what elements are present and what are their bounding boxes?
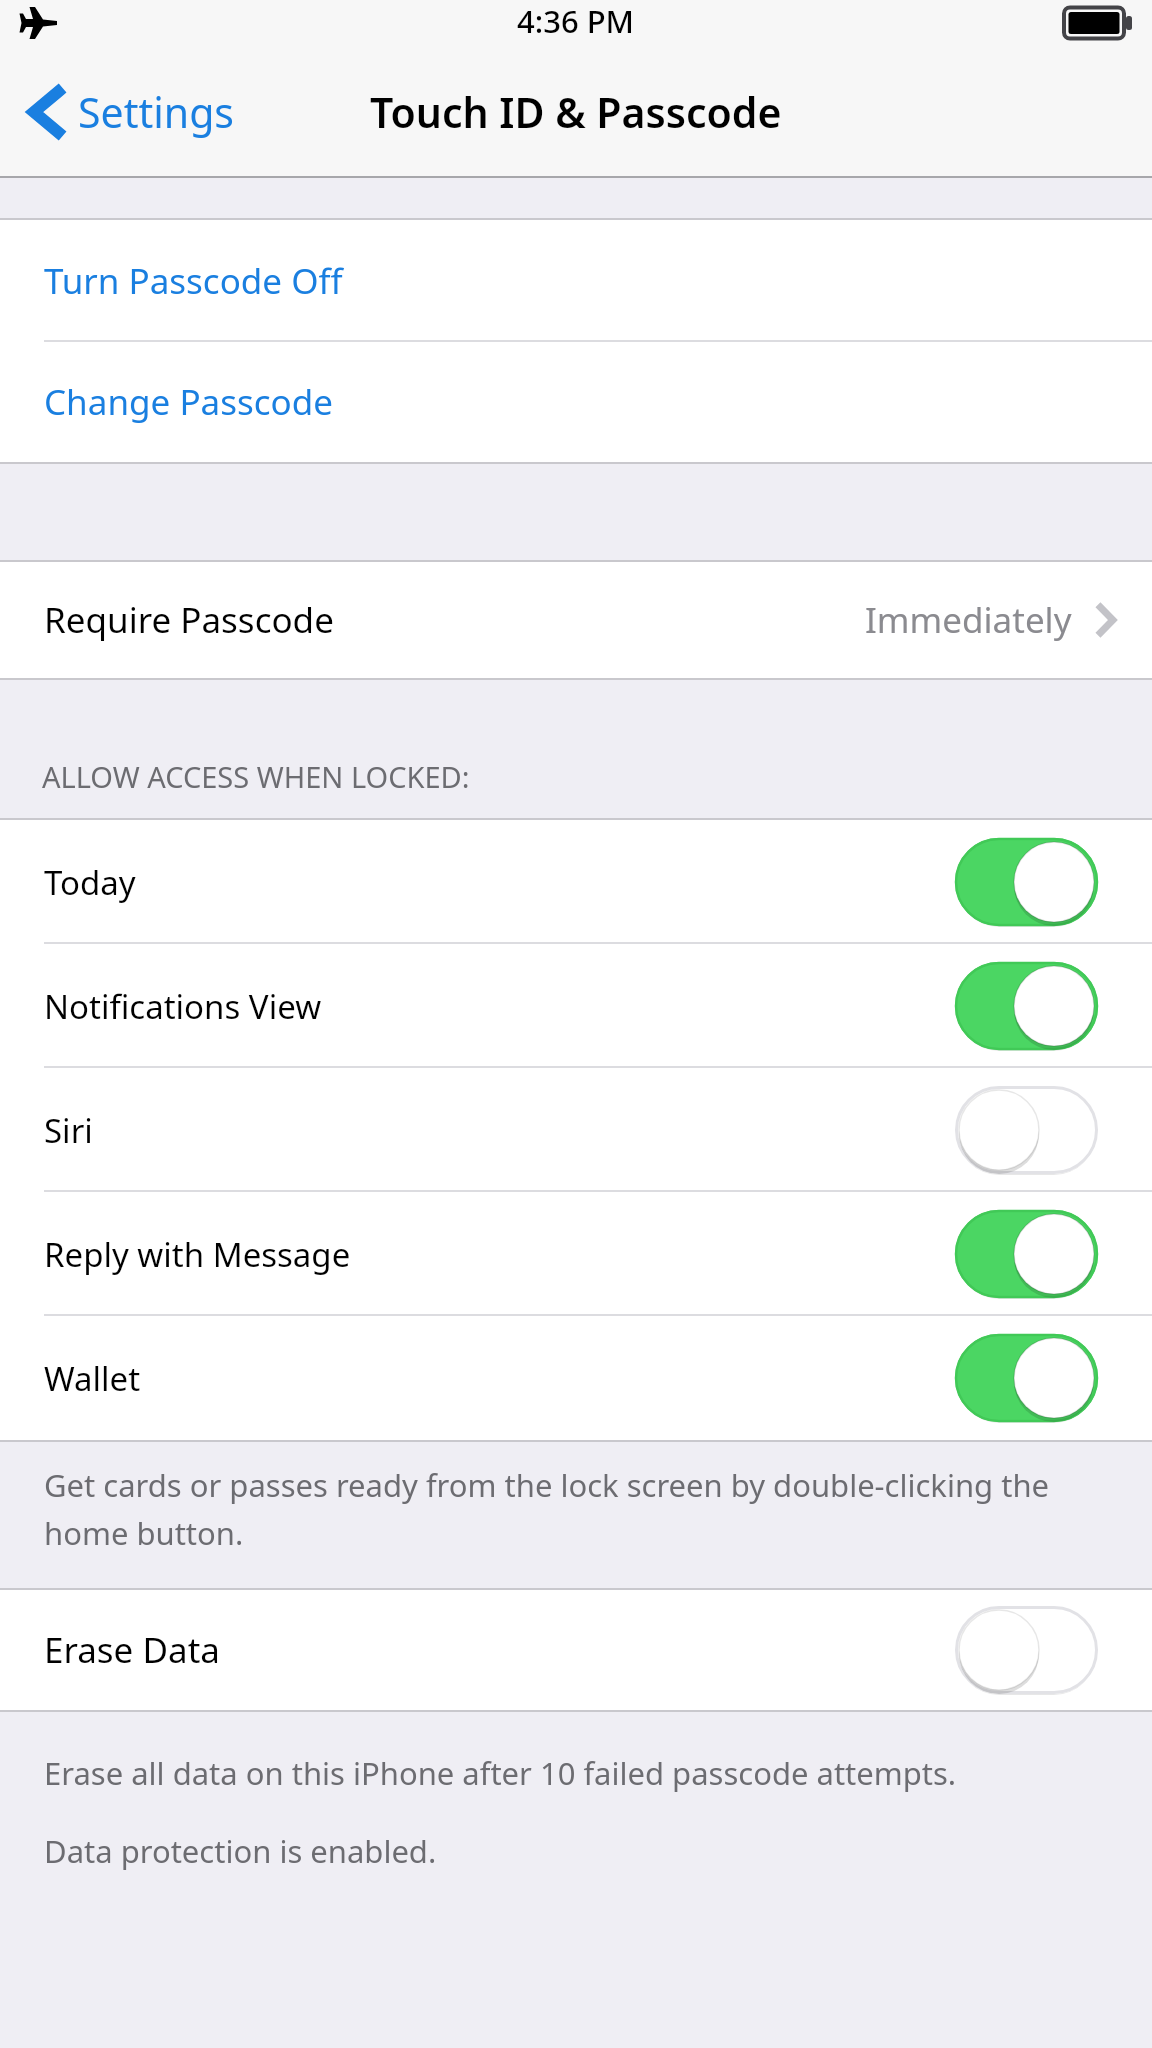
button[interactable]: Off <box>955 1606 1098 1694</box>
button[interactable]: On <box>955 838 1098 926</box>
button[interactable]: Today <box>0 820 1152 944</box>
staticText: Require Passcode <box>44 596 334 644</box>
staticText: Touch ID & Passcode <box>370 84 782 140</box>
staticText: Notifications View <box>44 984 322 1029</box>
staticText: 4:36 PM <box>517 0 635 42</box>
staticText: Settings <box>78 84 235 140</box>
staticText: Turn Passcode Off <box>44 257 343 305</box>
button[interactable]: Erase Data <box>0 1590 1152 1710</box>
staticText: Immediately <box>865 596 1072 644</box>
staticText: Siri <box>44 1108 93 1153</box>
staticText: ALLOW ACCESS WHEN LOCKED: <box>42 757 470 796</box>
button[interactable]: Change Passcode <box>0 342 1152 462</box>
staticText: Reply with Message <box>44 1232 351 1277</box>
staticText: Data protection is enabled. <box>44 1830 437 1872</box>
button[interactable]: Off <box>955 1086 1098 1174</box>
staticText: Today <box>44 860 136 905</box>
staticText: Erase Data <box>44 1626 220 1674</box>
button[interactable]: On <box>955 1210 1098 1298</box>
button[interactable]: Turn Passcode Off <box>0 220 1152 342</box>
button[interactable]: Back to Settings <box>26 84 251 140</box>
staticText: Get cards or passes ready from the lock … <box>44 1464 1102 1554</box>
button[interactable]: Wallet <box>0 1316 1152 1440</box>
button[interactable]: Notifications View <box>0 944 1152 1068</box>
button[interactable]: On <box>955 1334 1098 1422</box>
button[interactable]: Require Passcode <box>0 562 1152 678</box>
staticText: Change Passcode <box>44 378 333 426</box>
button[interactable]: On <box>955 962 1098 1050</box>
button[interactable]: Siri <box>0 1068 1152 1192</box>
staticText: Erase all data on this iPhone after 10 f… <box>44 1752 957 1794</box>
button[interactable]: Reply with Message <box>0 1192 1152 1316</box>
staticText: Wallet <box>44 1356 141 1401</box>
